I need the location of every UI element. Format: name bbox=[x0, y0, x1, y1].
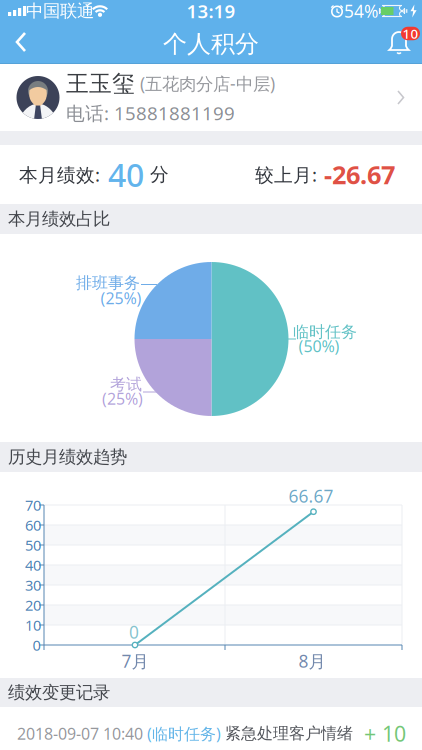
staticText: 王玉玺 bbox=[66, 70, 135, 97]
button[interactable]: 王玉玺 bbox=[0, 64, 422, 131]
staticText: 中国联通 bbox=[26, 0, 94, 22]
staticText: 13:19 bbox=[186, 0, 235, 23]
staticText: 66.67 bbox=[288, 484, 333, 507]
staticText: 54% bbox=[344, 0, 378, 22]
button[interactable]: Back bbox=[0, 22, 44, 64]
staticText: 10 bbox=[402, 25, 418, 42]
staticText: (25%) bbox=[102, 388, 143, 409]
staticText: 0 bbox=[32, 635, 40, 655]
staticText: 个人积分 bbox=[163, 29, 259, 59]
staticText: (50%) bbox=[298, 335, 339, 357]
staticText: 历史月绩效趋势 bbox=[8, 446, 127, 468]
staticText: -26.67 bbox=[317, 158, 395, 191]
staticText: + 10 bbox=[364, 719, 406, 748]
staticText: 7月 bbox=[121, 649, 148, 672]
button[interactable]: 2018-09-07 10:40 bbox=[0, 707, 422, 750]
staticText: 较上月: bbox=[255, 162, 317, 187]
staticText: 电话: 15881881199 bbox=[66, 100, 235, 125]
staticText: 40 bbox=[25, 555, 41, 575]
staticText: (25%) bbox=[100, 287, 141, 309]
staticText: (五花肉分店-中层) bbox=[140, 72, 275, 95]
staticText: 60 bbox=[25, 515, 41, 535]
staticText: 50 bbox=[25, 535, 41, 555]
button[interactable]: Notifications bbox=[377, 24, 421, 66]
staticText: 本月绩效: bbox=[19, 162, 100, 187]
staticText: 30 bbox=[25, 575, 41, 595]
staticText: 分 bbox=[144, 163, 169, 186]
staticText: 本月绩效占比 bbox=[8, 208, 110, 230]
staticText: 2018-09-07 10:40 bbox=[17, 723, 147, 744]
staticText: 70 bbox=[25, 495, 41, 515]
staticText: 绩效变更记录 bbox=[8, 682, 110, 703]
staticText: 临时任务 bbox=[293, 322, 357, 342]
staticText: 排班事务 bbox=[76, 273, 140, 293]
staticText: 紧急处理客户情绪 bbox=[225, 724, 353, 743]
staticText: 8月 bbox=[298, 649, 325, 672]
staticText: 10 bbox=[25, 615, 41, 635]
staticText: 40 bbox=[100, 153, 144, 196]
staticText: 0 bbox=[129, 620, 139, 643]
staticText: 20 bbox=[25, 595, 41, 615]
staticText: 考试 bbox=[110, 375, 142, 394]
staticText: (临时任务) bbox=[147, 723, 225, 744]
